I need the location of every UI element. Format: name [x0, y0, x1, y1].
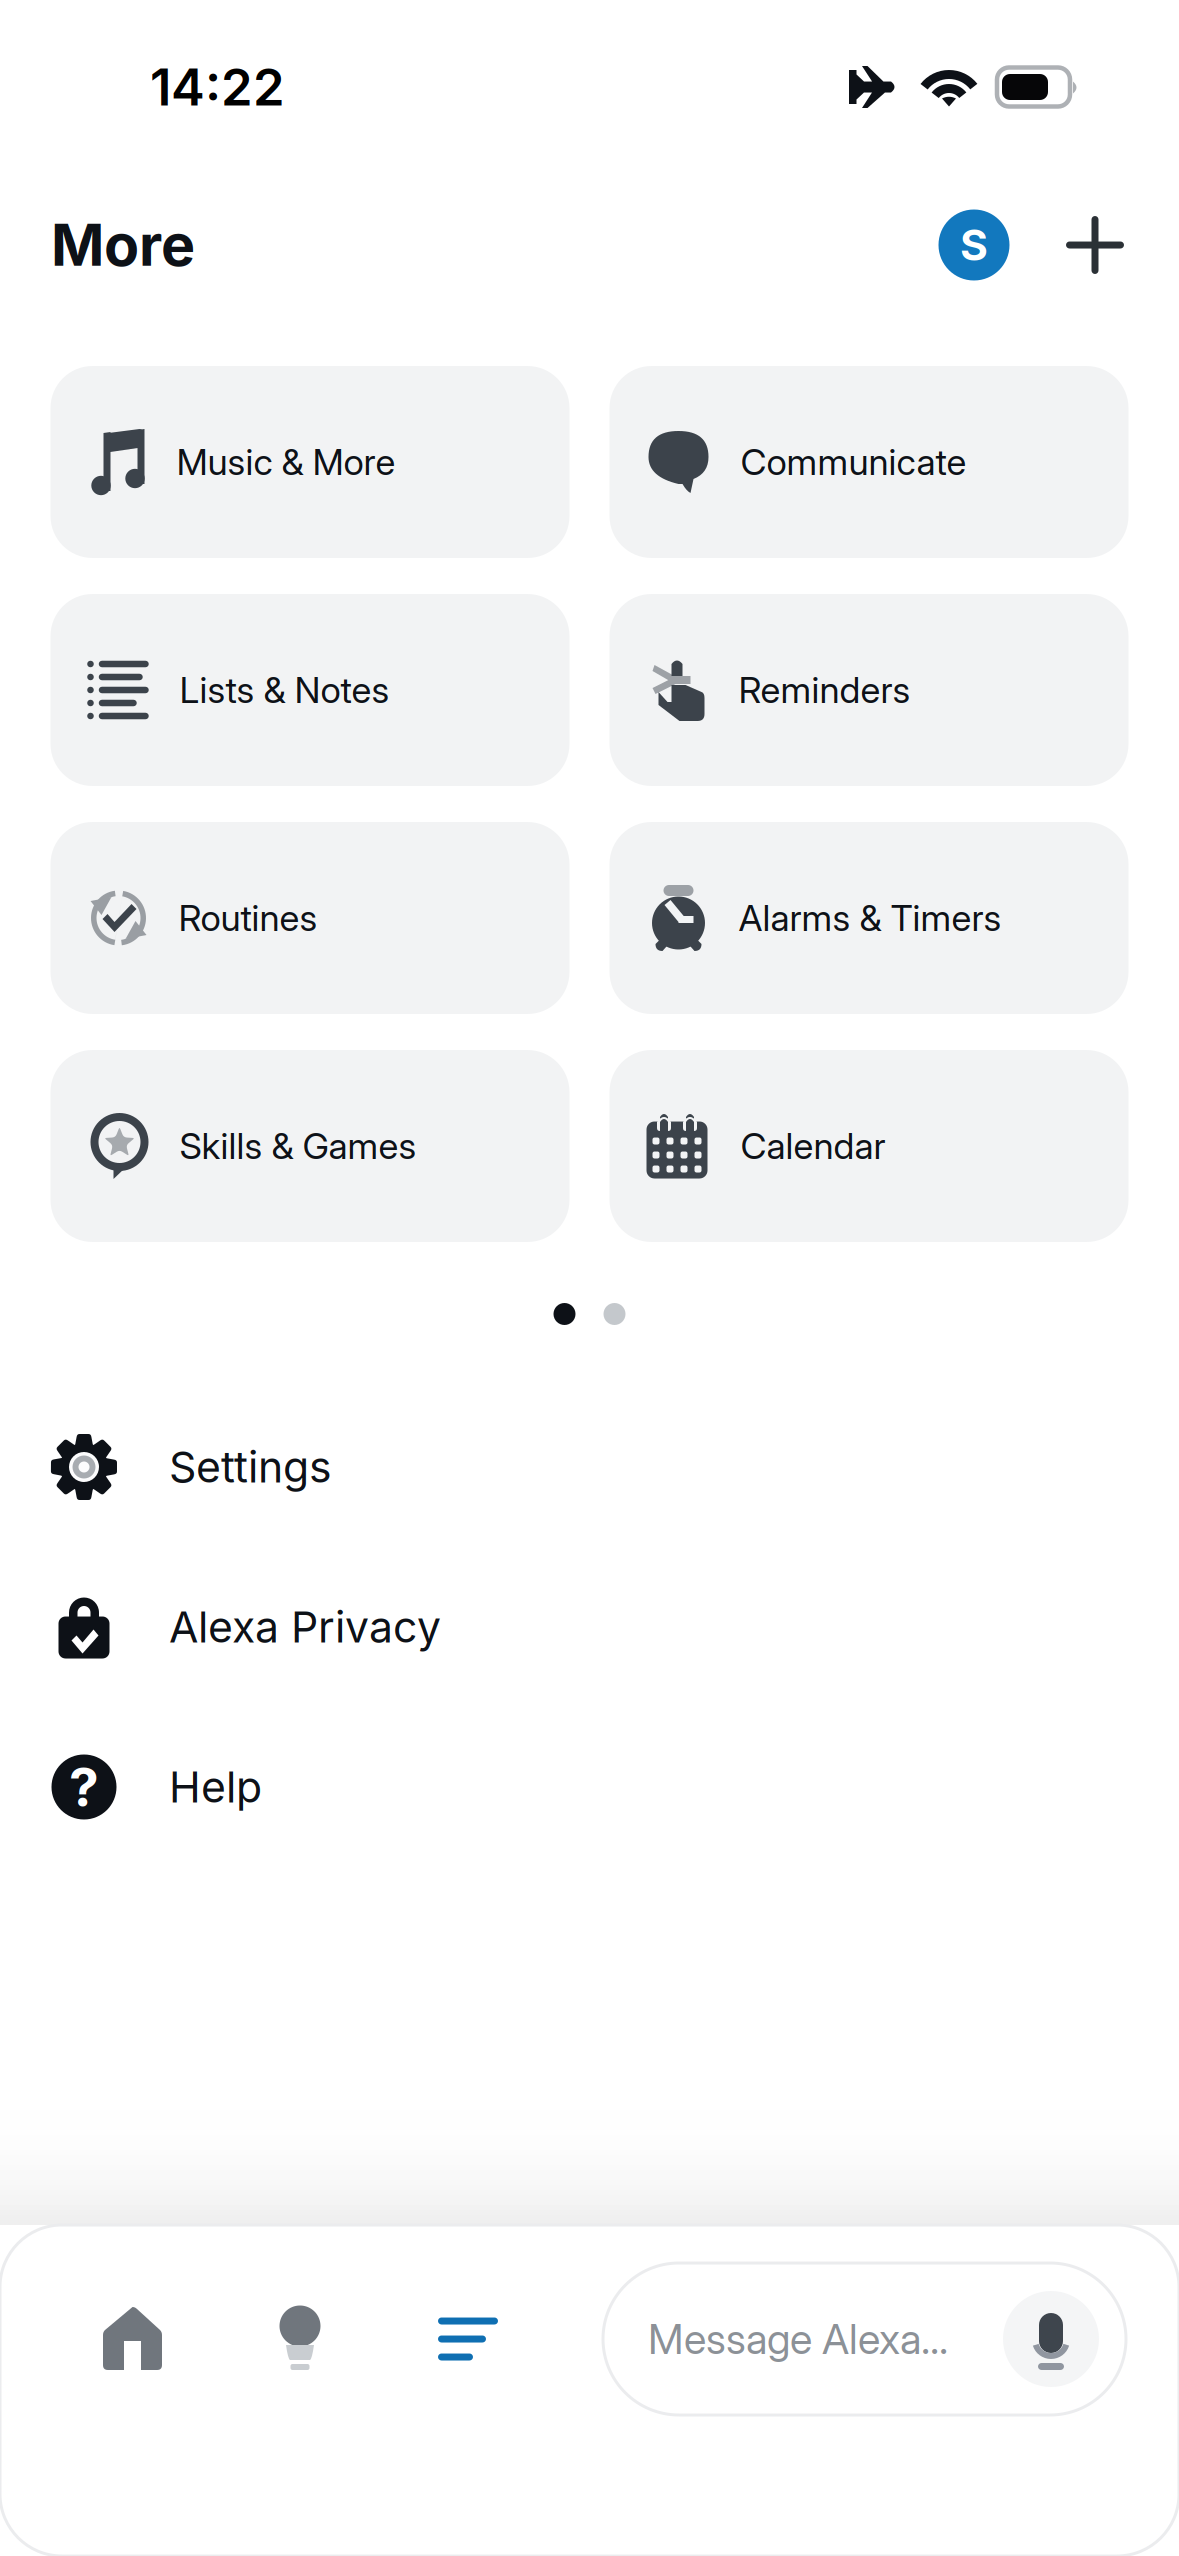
staticText: ? [69, 1755, 99, 1819]
button[interactable]: Lists & Notes [50, 594, 569, 786]
button[interactable]: Settings [0, 1387, 1179, 1547]
button[interactable]: More [438, 2276, 498, 2402]
button[interactable]: Routines [50, 822, 569, 1014]
button[interactable]: Message Alexa... [603, 2263, 1126, 2415]
button[interactable]: Home [103, 2276, 162, 2402]
staticText: Communicate [740, 440, 966, 484]
button[interactable]: Profile [934, 205, 1014, 285]
staticText: Skills & Games [179, 1124, 416, 1168]
button[interactable]: Alexa Privacy [0, 1547, 1179, 1707]
staticText: 14:22 [150, 56, 285, 118]
staticText: Message Alexa... [648, 2314, 948, 2364]
staticText: Lists & Notes [179, 668, 389, 712]
staticText: Music & More [176, 440, 395, 484]
button[interactable]: Music & More [50, 366, 569, 558]
button[interactable]: Reminders [609, 594, 1128, 786]
staticText: Alarms & Timers [738, 896, 1001, 940]
button[interactable]: Skills & Games [50, 1050, 569, 1242]
staticText: Help [169, 1761, 262, 1813]
staticText: S [960, 219, 988, 271]
staticText: Reminders [738, 668, 910, 712]
button[interactable]: ? [0, 1707, 1179, 1867]
button[interactable]: Add device [1055, 205, 1135, 285]
staticText: Settings [169, 1441, 332, 1493]
button[interactable]: Devices [279, 2276, 321, 2402]
button[interactable]: Alarms & Timers [609, 822, 1128, 1014]
staticText: More [51, 210, 195, 280]
staticText: Routines [178, 896, 317, 940]
staticText: Calendar [740, 1124, 885, 1168]
staticText: Alexa Privacy [169, 1601, 441, 1653]
button[interactable]: Communicate [609, 366, 1128, 558]
button[interactable]: Calendar [609, 1050, 1128, 1242]
